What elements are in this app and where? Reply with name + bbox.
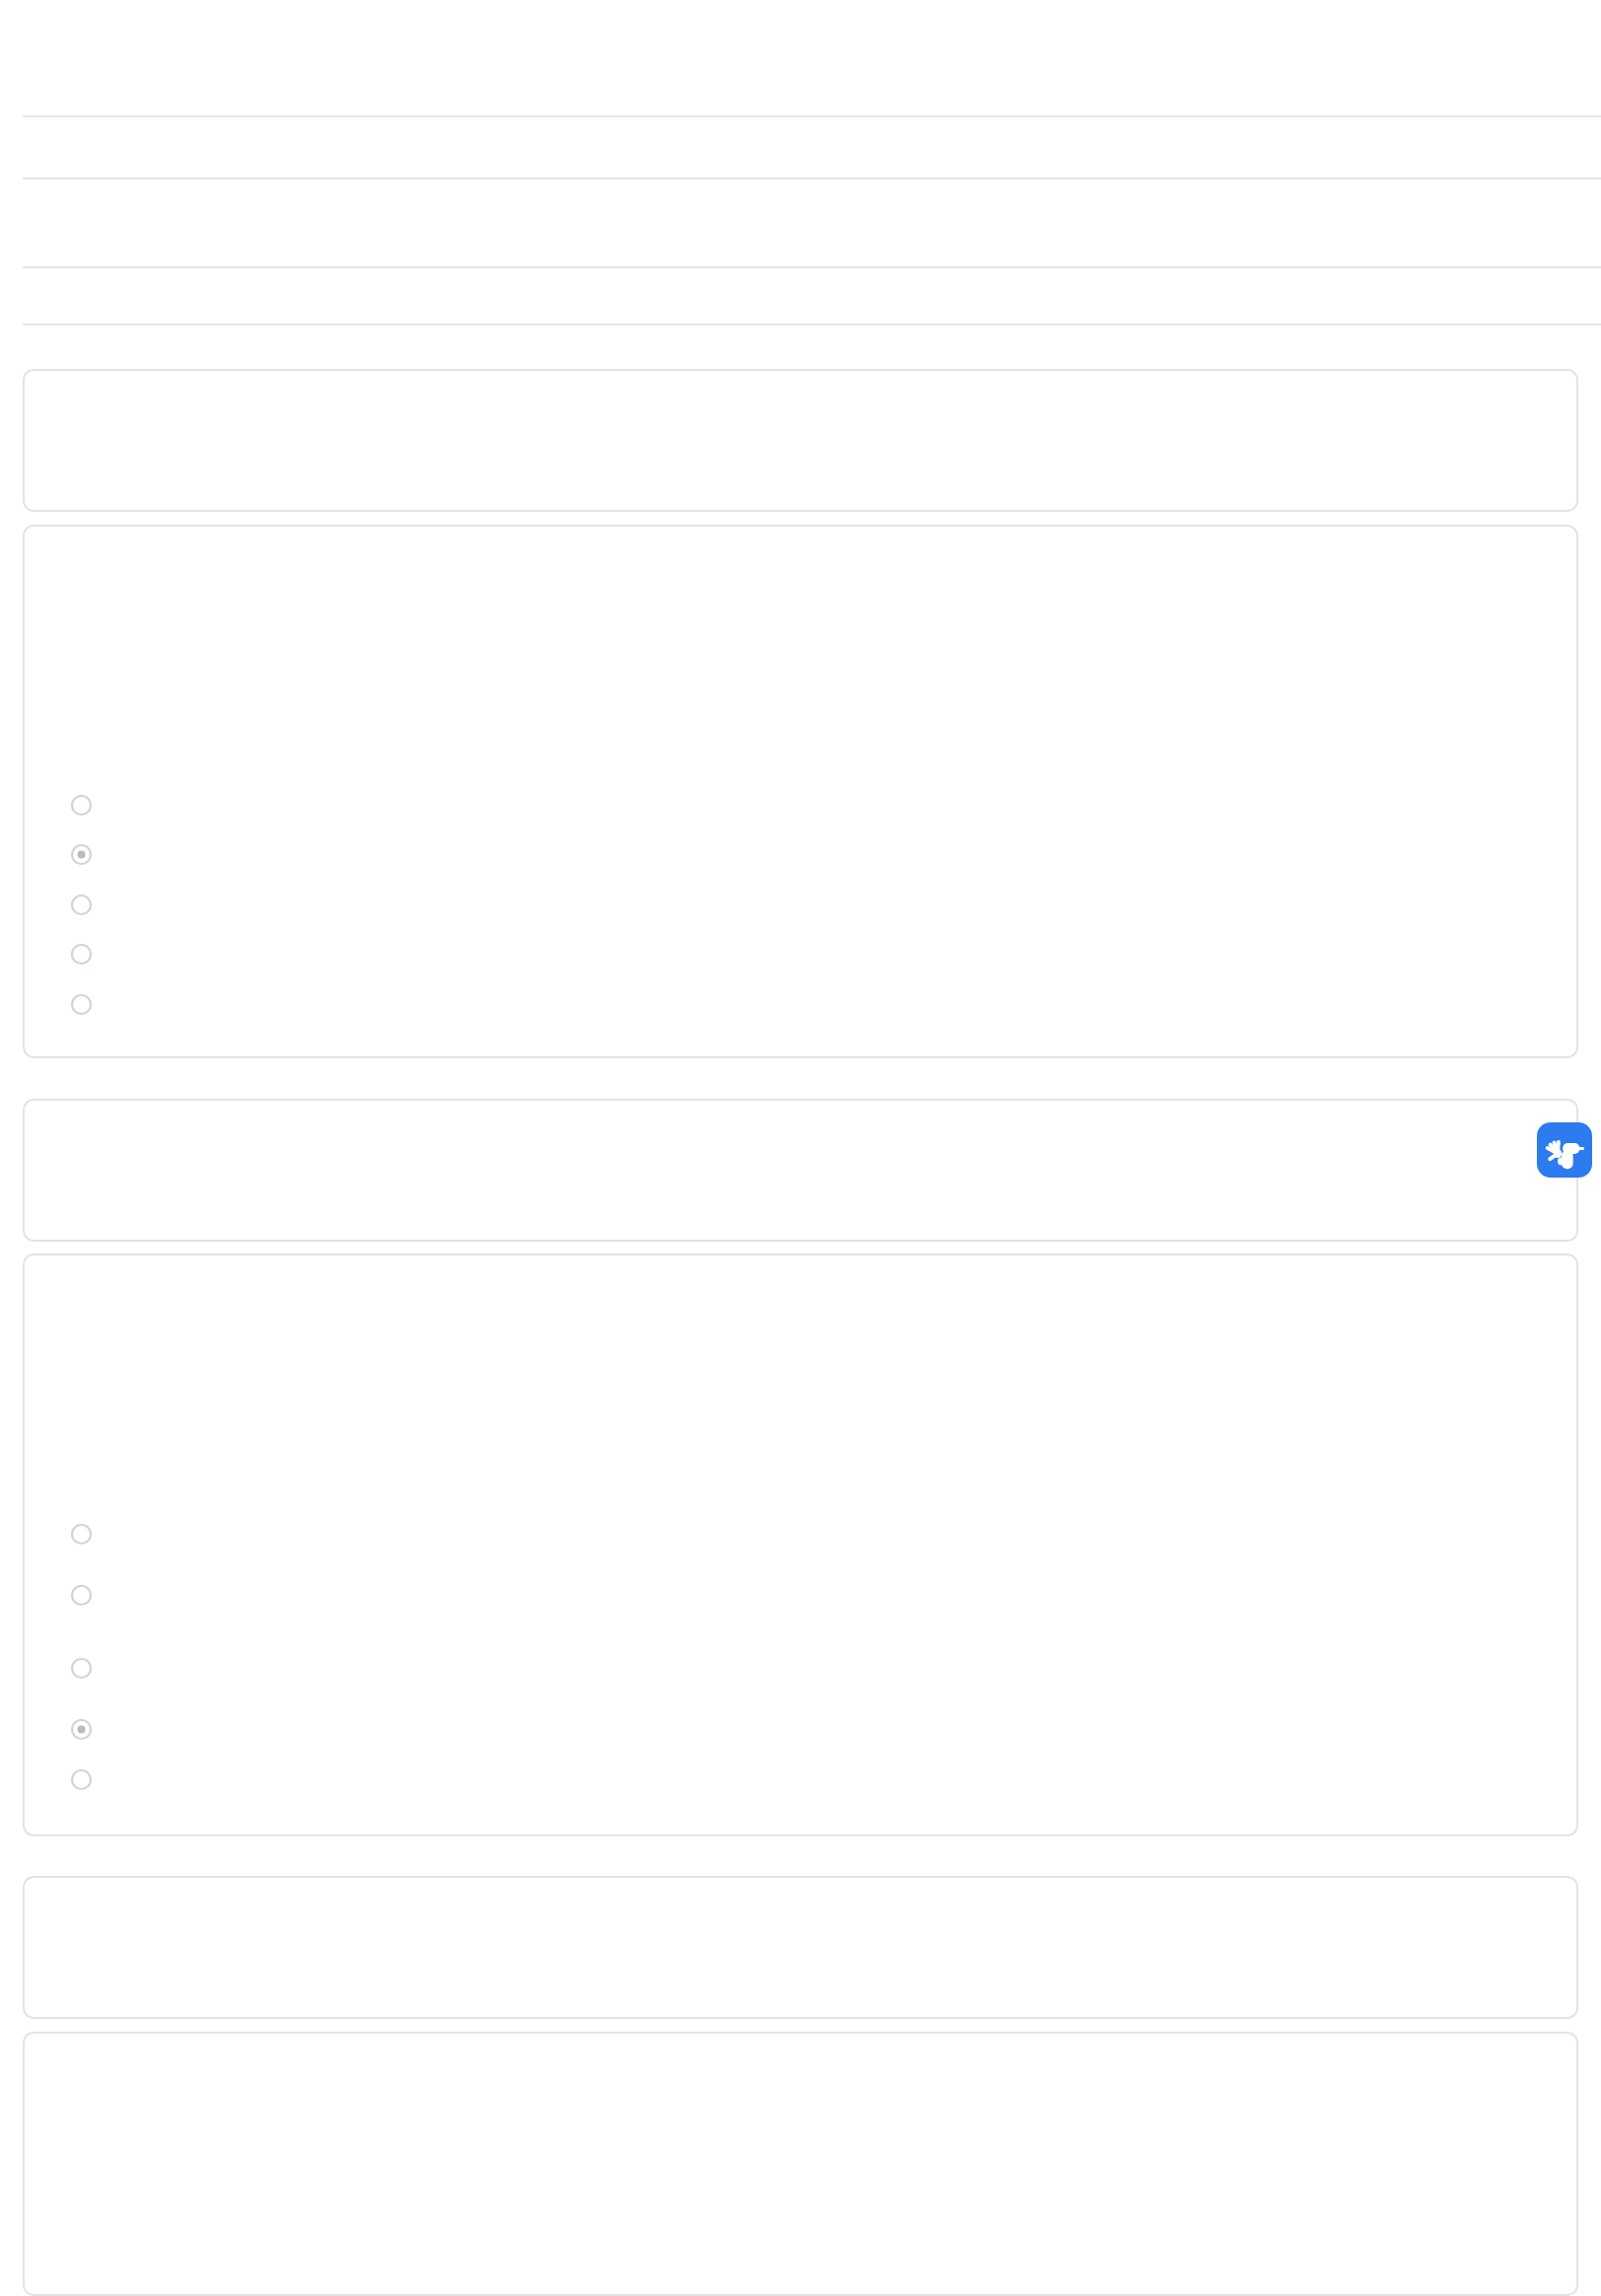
button[interactable]: Selected option xyxy=(61,834,101,874)
button[interactable]: Option xyxy=(61,1575,101,1614)
button[interactable] xyxy=(23,1876,1578,2019)
button[interactable]: Option xyxy=(61,934,101,973)
button[interactable] xyxy=(23,369,1578,512)
button[interactable]: Sign language assistance xyxy=(1537,1122,1592,1178)
button[interactable]: Option xyxy=(61,984,101,1024)
button[interactable]: Option xyxy=(61,1514,101,1553)
button[interactable]: Option xyxy=(61,1648,101,1687)
button[interactable] xyxy=(23,1099,1578,1242)
button[interactable] xyxy=(23,2032,1578,2296)
button[interactable]: Option xyxy=(61,885,101,924)
button[interactable]: Option xyxy=(61,1759,101,1799)
button[interactable]: Selected option xyxy=(61,1709,101,1749)
button[interactable]: Option xyxy=(61,785,101,825)
